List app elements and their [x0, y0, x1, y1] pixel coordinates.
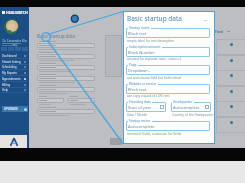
staticText: Autocomplete	[128, 124, 155, 129]
staticText: Dashboard	[2, 54, 17, 58]
button[interactable]	[37, 43, 95, 48]
staticText: Founding date	[129, 100, 151, 104]
button[interactable]	[37, 87, 95, 92]
staticText: My Reports	[2, 71, 17, 75]
staticText: Website or service	[129, 82, 157, 86]
staticText: Page	[129, 63, 137, 67]
button[interactable]: Dropdown...	[126, 65, 210, 75]
button[interactable]	[216, 101, 245, 117]
button[interactable]: Block Number	[126, 47, 210, 57]
button[interactable]: Profile photo	[4, 19, 19, 34]
button[interactable]	[216, 117, 245, 133]
staticText: Block Number	[128, 50, 155, 55]
button[interactable]: Help	[0, 87, 29, 93]
button[interactable]: Autocomplete	[171, 102, 211, 112]
button[interactable]: Panel options	[227, 30, 230, 33]
button[interactable]: My Reports	[0, 70, 29, 76]
staticText: Basic startup data	[37, 33, 76, 39]
button[interactable]: Appointments	[0, 76, 29, 82]
staticText: Dr. Cassandra Ella Ray	[0, 39, 29, 47]
staticText: Block text	[128, 31, 147, 36]
staticText: UPGRADE	[4, 107, 18, 111]
staticText: can copy a quick id's OK rem	[127, 94, 170, 98]
staticText: Scheduling	[2, 65, 17, 69]
staticText: HEALWATCH	[6, 10, 28, 15]
staticText: Appointments	[2, 77, 21, 81]
staticText: Country of the Headquarter	[172, 113, 214, 117]
staticText: Headquarter	[173, 100, 193, 104]
staticText: Startup sector	[129, 119, 151, 123]
button[interactable]: Dashboard	[0, 53, 29, 59]
staticText: Patient Listing	[2, 60, 21, 64]
button[interactable]	[68, 98, 95, 103]
staticText: Startup name	[129, 26, 150, 30]
staticText: Help	[2, 88, 9, 92]
button[interactable]	[216, 39, 245, 55]
staticText: simple label for text description	[127, 39, 175, 43]
staticText: Start of year	[128, 105, 152, 110]
button[interactable]: Company logo	[0, 135, 27, 148]
button[interactable]	[216, 86, 245, 102]
staticText: Billing	[2, 83, 11, 87]
staticText: ••	[204, 18, 208, 23]
button[interactable]: UPGRADE	[2, 106, 28, 112]
button[interactable]: Block text	[126, 84, 210, 94]
staticText: an used for separate rows - rows n-2	[127, 57, 182, 61]
staticText: Block text	[128, 87, 147, 92]
button[interactable]: HEALWATCH	[2, 10, 28, 15]
staticText: Date / Month	[127, 113, 147, 117]
button[interactable]: Billing	[0, 82, 29, 88]
button[interactable]	[37, 76, 95, 81]
button[interactable]: Scheduling	[0, 64, 29, 70]
button[interactable]	[37, 109, 95, 114]
button[interactable]	[37, 98, 64, 103]
staticText: Dropdown...	[128, 68, 152, 73]
button[interactable]	[216, 70, 245, 86]
staticText: Final	[215, 29, 224, 34]
button[interactable]	[110, 138, 122, 145]
button[interactable]	[216, 55, 245, 71]
staticText: aut and choose field but field critical	[127, 76, 182, 80]
button[interactable]: More options	[203, 17, 209, 23]
staticText: Autocomplete	[173, 105, 200, 110]
staticText: several of fields, customize for fields	[127, 132, 182, 136]
staticText: Basic startup data	[127, 14, 182, 23]
button[interactable]: Autocomplete	[126, 121, 210, 131]
button[interactable]: Block text	[126, 28, 210, 38]
button[interactable]	[37, 65, 95, 70]
staticText: Subscription amount	[129, 45, 161, 49]
button[interactable]: Start of year	[126, 102, 166, 112]
button[interactable]	[37, 54, 95, 59]
button[interactable]: Patient Listing	[0, 59, 29, 65]
